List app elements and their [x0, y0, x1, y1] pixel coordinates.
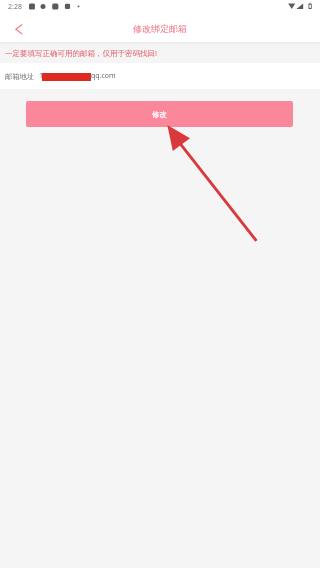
- button[interactable]: 修改: [26, 101, 293, 127]
- staticText: qq.com: [91, 71, 116, 81]
- staticText: 1: [39, 71, 44, 81]
- staticText: 修改: [152, 110, 167, 119]
- staticText: 邮箱地址: [5, 72, 34, 81]
- staticText: 2:28: [8, 2, 22, 12]
- button[interactable]: Back: [2, 16, 36, 42]
- staticText: 一定要填写正确可用的邮箱，仅用于密码找回!: [5, 48, 158, 58]
- staticText: 修改绑定邮箱: [133, 23, 187, 34]
